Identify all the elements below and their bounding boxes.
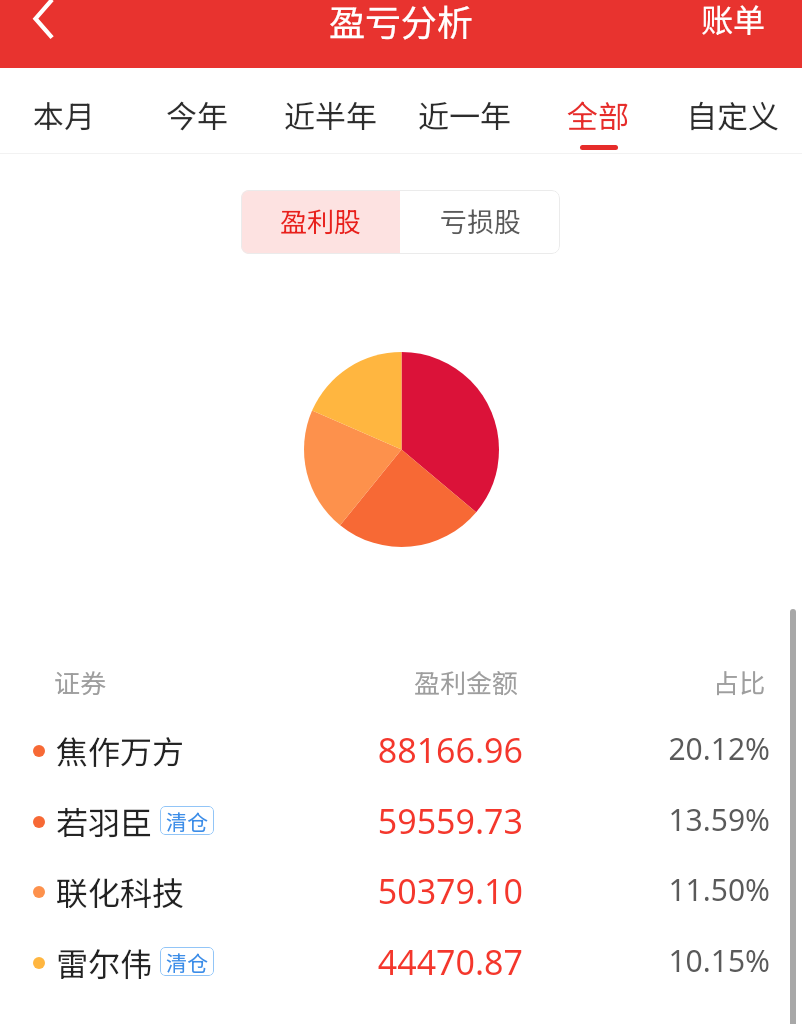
- staticText: 盈利股: [280, 201, 361, 240]
- button[interactable]: 盈利股: [241, 190, 400, 254]
- staticText: 若羽臣: [56, 798, 153, 844]
- staticText: 盈亏分析: [329, 0, 474, 46]
- staticText: 焦作万方: [56, 727, 185, 773]
- staticText: 10.15%: [0, 940, 770, 981]
- button[interactable]: 全部: [534, 68, 668, 154]
- staticText: 雷尔伟: [56, 939, 153, 985]
- staticText: 50379.10: [0, 868, 523, 914]
- staticText: 59559.73: [0, 798, 523, 844]
- staticText: 今年: [166, 92, 228, 137]
- button[interactable]: 本月: [0, 68, 133, 154]
- button[interactable]: 联化科技: [0, 856, 802, 926]
- button[interactable]: 雷尔伟: [0, 927, 802, 997]
- staticText: 近半年: [284, 92, 377, 137]
- staticText: 清仓: [166, 947, 208, 976]
- staticText: 20.12%: [0, 728, 770, 769]
- staticText: 自定义: [686, 92, 779, 137]
- staticText: 近一年: [418, 92, 511, 137]
- button[interactable]: 亏损股: [400, 190, 560, 254]
- staticText: 盈利金额: [414, 663, 519, 701]
- button[interactable]: 自定义: [668, 68, 802, 154]
- button[interactable]: Back: [4, 0, 60, 42]
- button[interactable]: 账单: [677, 0, 802, 53]
- button[interactable]: 今年: [133, 68, 266, 154]
- staticText: 11.50%: [0, 869, 770, 910]
- staticText: 清仓: [166, 806, 208, 835]
- button[interactable]: 近一年: [400, 68, 534, 154]
- staticText: 联化科技: [56, 868, 185, 914]
- staticText: 88166.96: [0, 727, 523, 773]
- staticText: 证券: [54, 663, 107, 701]
- staticText: 44470.87: [0, 939, 523, 985]
- button[interactable]: 近半年: [266, 68, 400, 154]
- staticText: 全部: [567, 92, 629, 137]
- button[interactable]: 若羽臣: [0, 786, 802, 856]
- staticText: 亏损股: [440, 201, 521, 240]
- staticText: 13.59%: [0, 799, 770, 840]
- staticText: 本月: [33, 92, 95, 137]
- staticText: 账单: [701, 0, 766, 41]
- staticText: 占比: [0, 663, 765, 701]
- button[interactable]: 焦作万方: [0, 715, 802, 785]
